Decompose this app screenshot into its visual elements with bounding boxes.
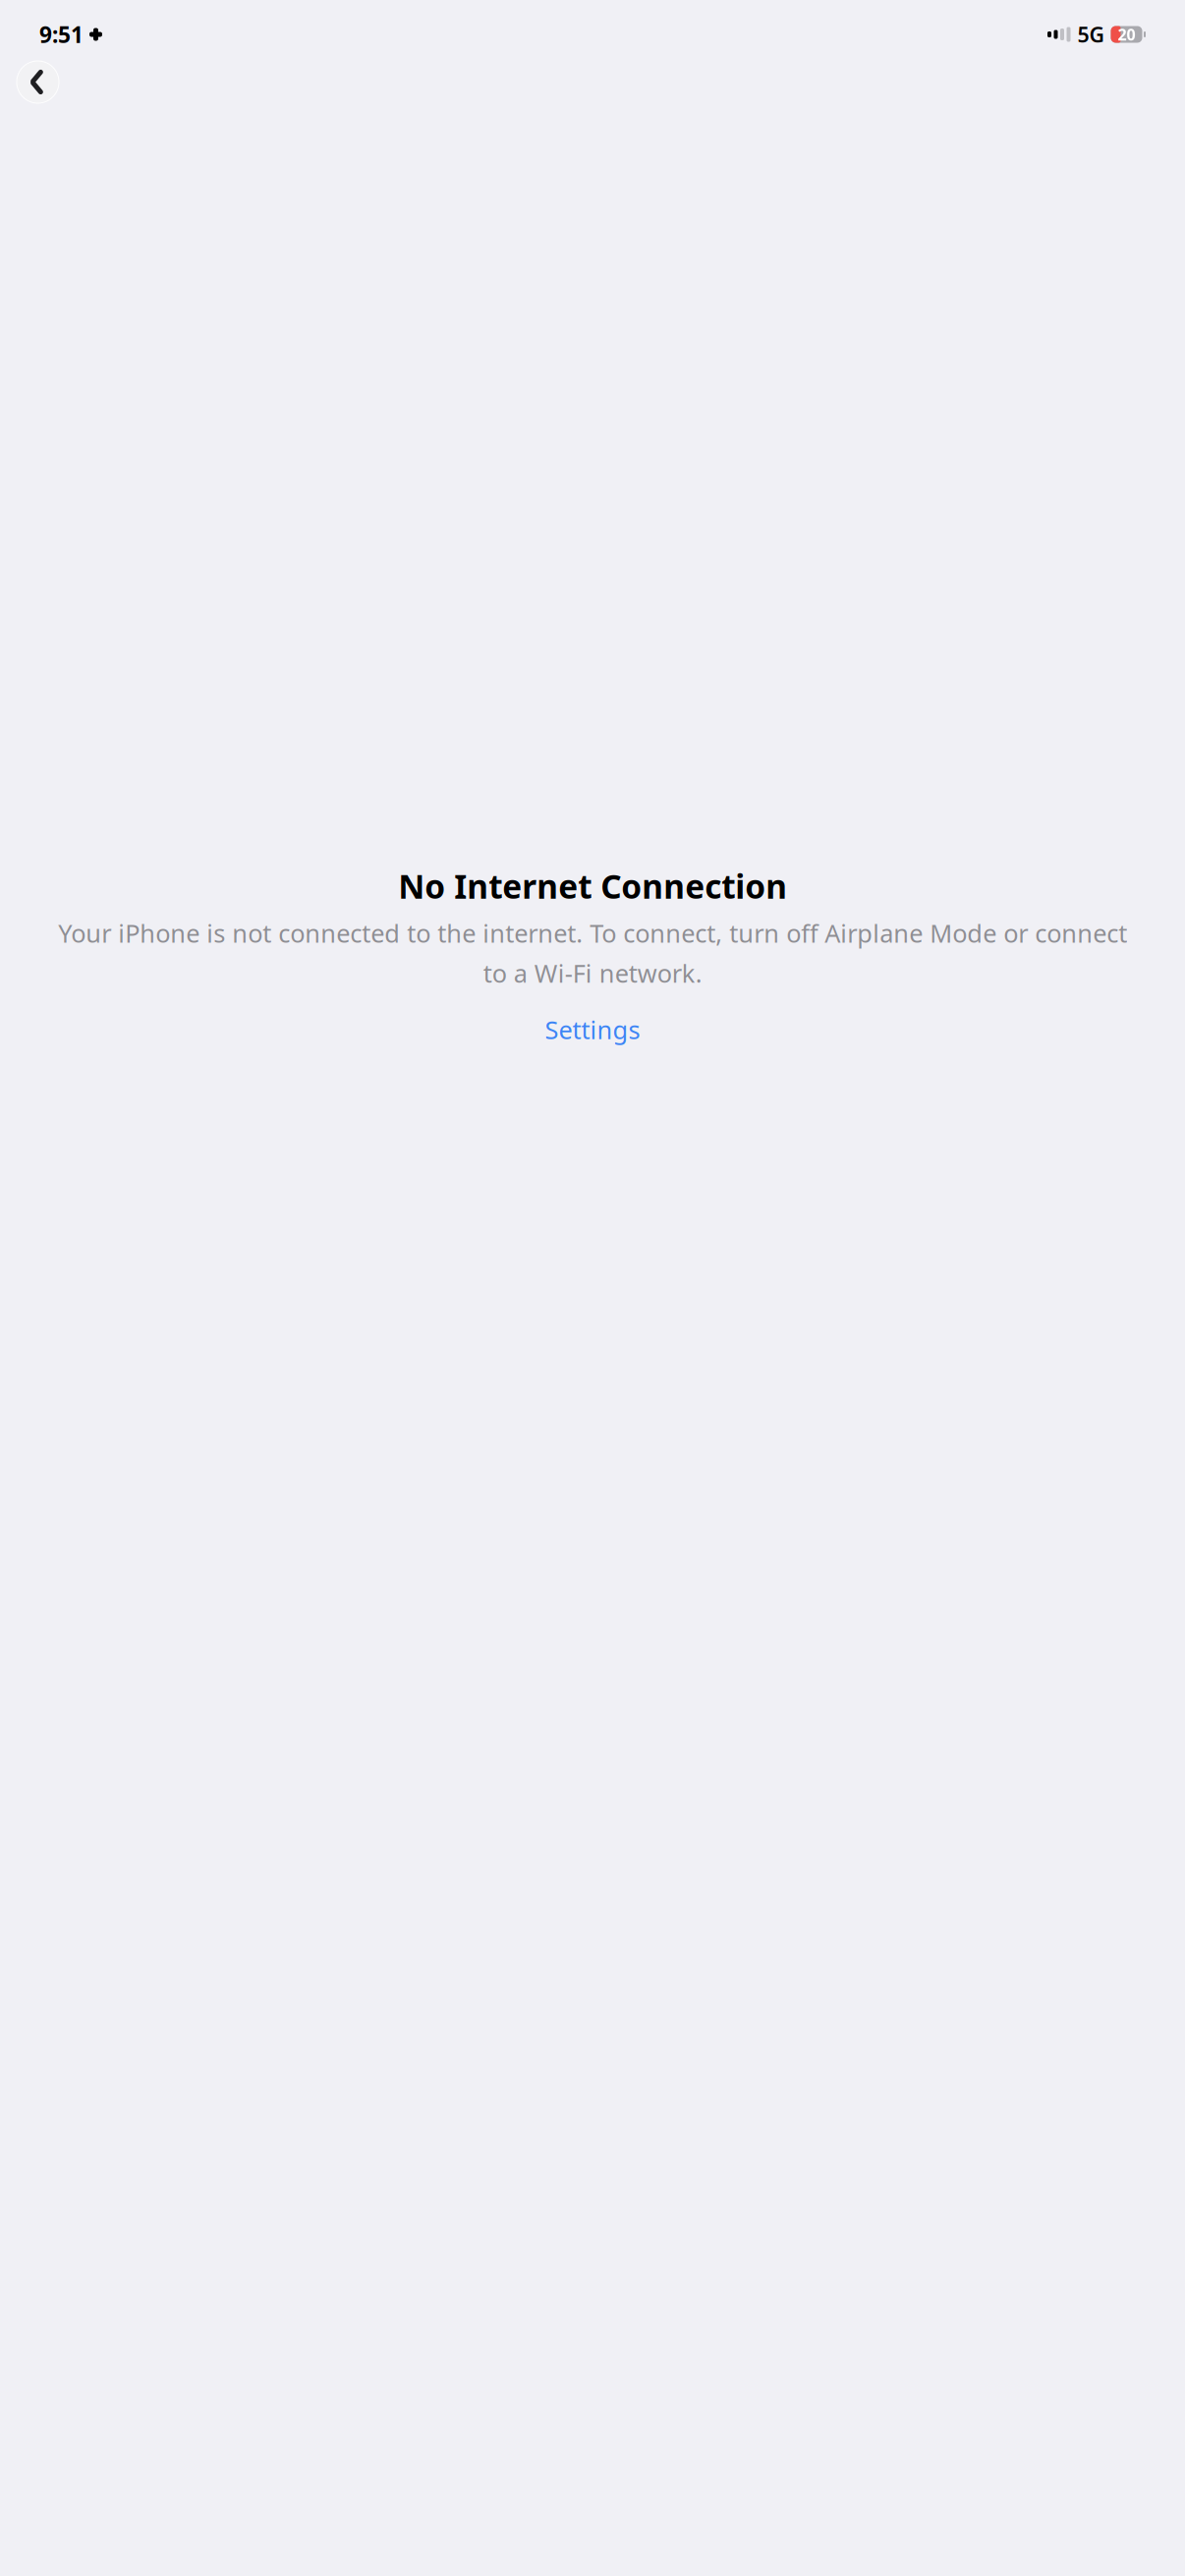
staticText: 20 [1118,24,1135,45]
staticText: 9:51 [39,20,84,49]
staticText: No Internet Connection [398,864,787,908]
staticText: Your iPhone is not connected to the inte… [58,917,1127,990]
staticText: Settings [545,1013,640,1046]
button[interactable]: Settings [529,1005,656,1054]
staticText: 5G [1077,20,1104,48]
button[interactable]: Back [17,61,59,103]
